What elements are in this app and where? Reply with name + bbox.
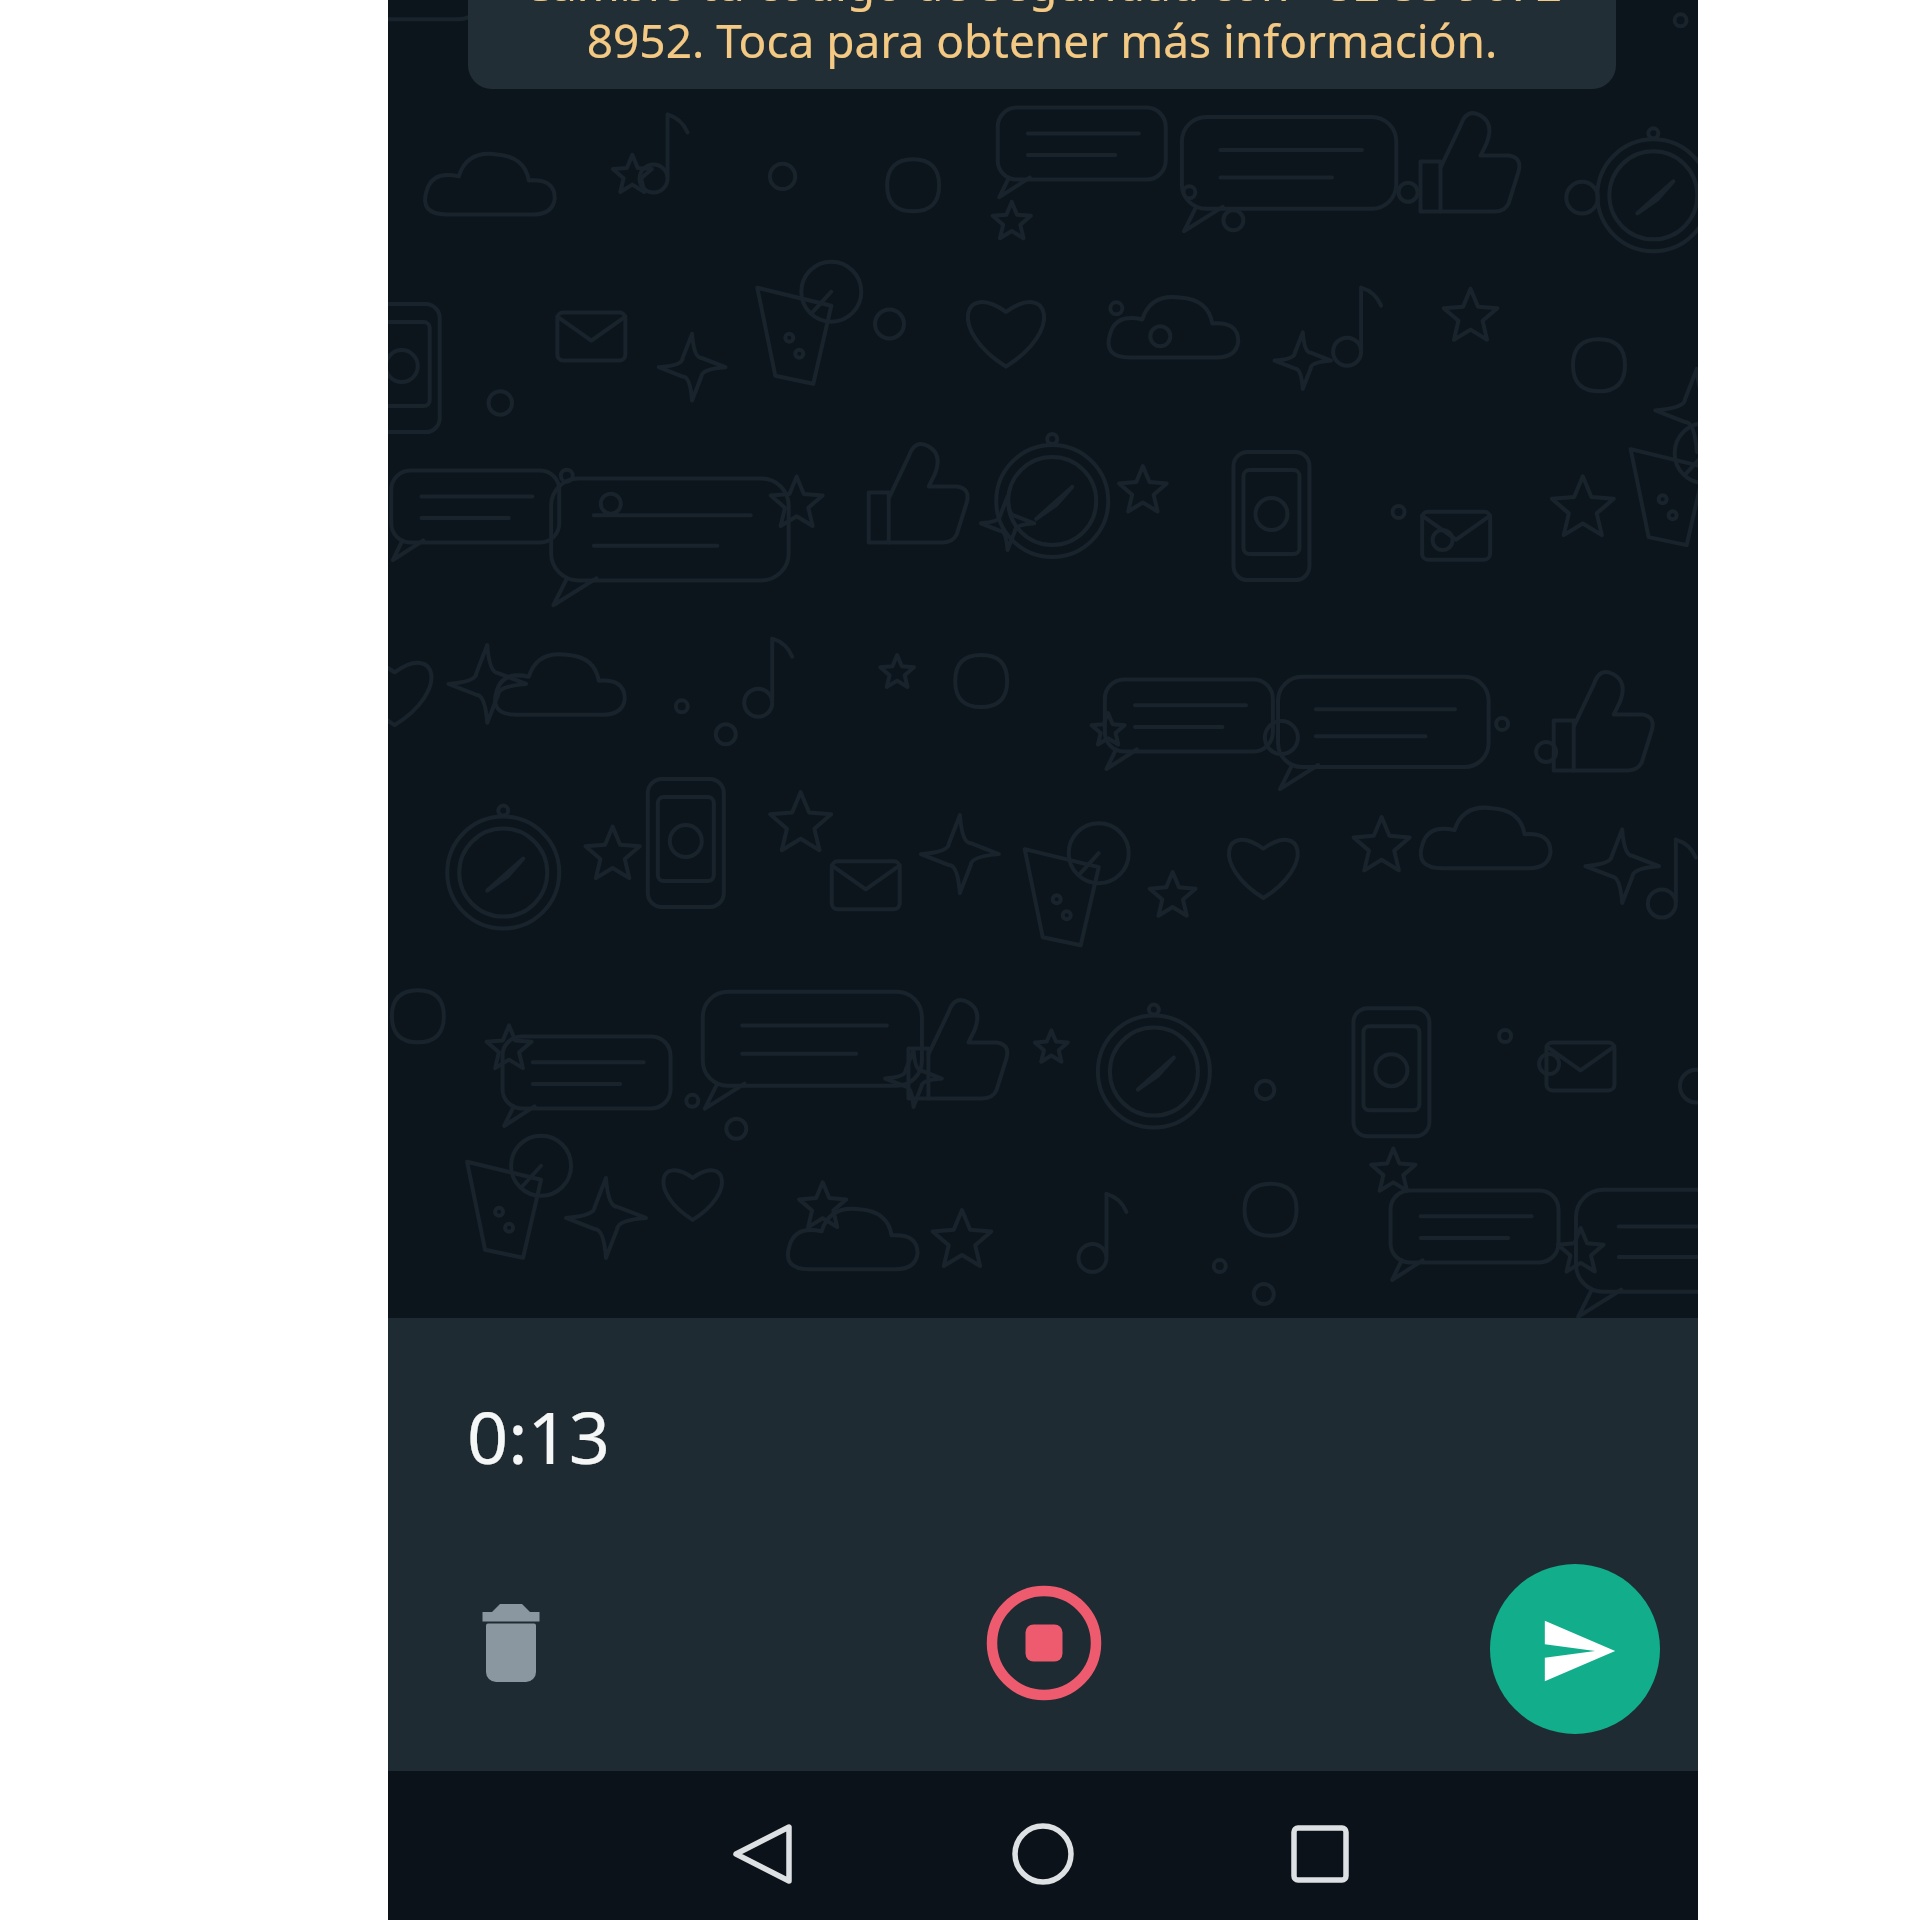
button[interactable] [708, 1799, 818, 1909]
button[interactable] [451, 1583, 571, 1703]
button[interactable] [1265, 1799, 1375, 1909]
button[interactable] [1490, 1564, 1660, 1734]
button[interactable] [974, 1573, 1114, 1713]
button[interactable] [988, 1799, 1098, 1909]
button[interactable]: Cambió tu código de seguridad con +52 55… [468, 0, 1616, 89]
staticText: Cambió tu código de seguridad con +52 55… [468, 0, 1616, 71]
staticText: 0:13 [467, 1387, 610, 1485]
